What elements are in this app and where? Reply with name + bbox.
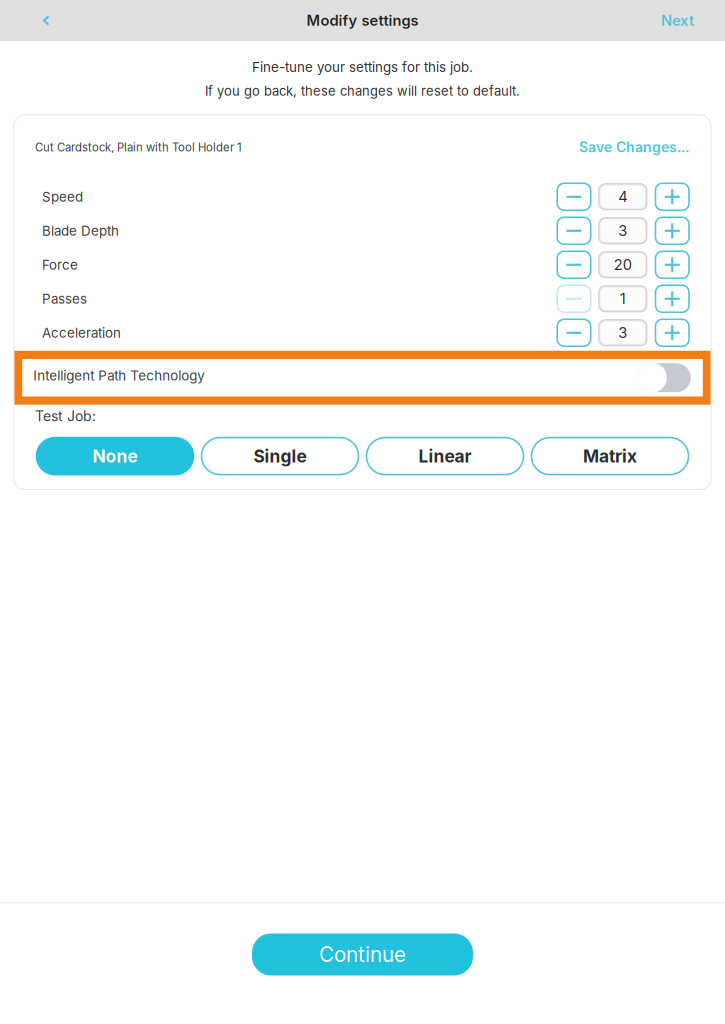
staticText: Fine-tune your settings for this job. — [252, 59, 473, 75]
staticText: Speed — [42, 189, 83, 205]
button[interactable]: Continue — [252, 933, 473, 975]
button[interactable]: Decrease Blade Depth — [557, 217, 591, 244]
button[interactable]: Decrease Acceleration — [557, 319, 591, 346]
staticText: Acceleration — [42, 325, 121, 341]
button[interactable]: Matrix — [531, 438, 688, 475]
button[interactable]: Increase Blade Depth — [655, 217, 689, 244]
button[interactable]: Decrease Speed — [557, 183, 591, 210]
staticText: Linear — [418, 446, 471, 467]
staticText: Single — [253, 446, 306, 467]
staticText: Continue — [319, 942, 406, 967]
button[interactable]: Increase Passes — [655, 285, 689, 312]
staticText: Intelligent Path Technology — [33, 368, 204, 384]
button[interactable]: Increase Force — [655, 251, 689, 278]
staticText: 3 — [618, 324, 627, 342]
staticText: 4 — [618, 188, 627, 206]
staticText: Next — [661, 12, 694, 29]
button[interactable]: Increase Acceleration — [655, 319, 689, 346]
button[interactable]: Single — [201, 438, 358, 475]
staticText: 3 — [618, 222, 627, 240]
staticText: None — [92, 446, 137, 467]
button[interactable]: Next — [661, 0, 694, 41]
staticText: 20 — [614, 256, 632, 274]
button[interactable]: Back — [28, 0, 64, 41]
button[interactable]: Increase Speed — [655, 183, 689, 210]
staticText: Matrix — [583, 446, 637, 467]
button[interactable]: Linear — [366, 438, 523, 475]
staticText: Force — [42, 257, 78, 273]
staticText: Test Job: — [35, 408, 96, 425]
staticText: Blade Depth — [42, 223, 119, 239]
staticText: If you go back, these changes will reset… — [205, 83, 520, 99]
staticText: Passes — [42, 291, 87, 307]
staticText: Modify settings — [306, 12, 418, 29]
button[interactable]: Save Changes... — [579, 139, 689, 156]
staticText: 1 — [620, 290, 626, 308]
button[interactable]: Decrease Passes — [557, 285, 591, 312]
button[interactable]: None — [36, 438, 193, 475]
staticText: Save Changes... — [579, 139, 689, 156]
staticText: Cut Cardstock, Plain with Tool Holder 1 — [35, 140, 242, 154]
button[interactable]: Decrease Force — [557, 251, 591, 278]
button[interactable]: Intelligent Path Technology — [637, 363, 691, 393]
